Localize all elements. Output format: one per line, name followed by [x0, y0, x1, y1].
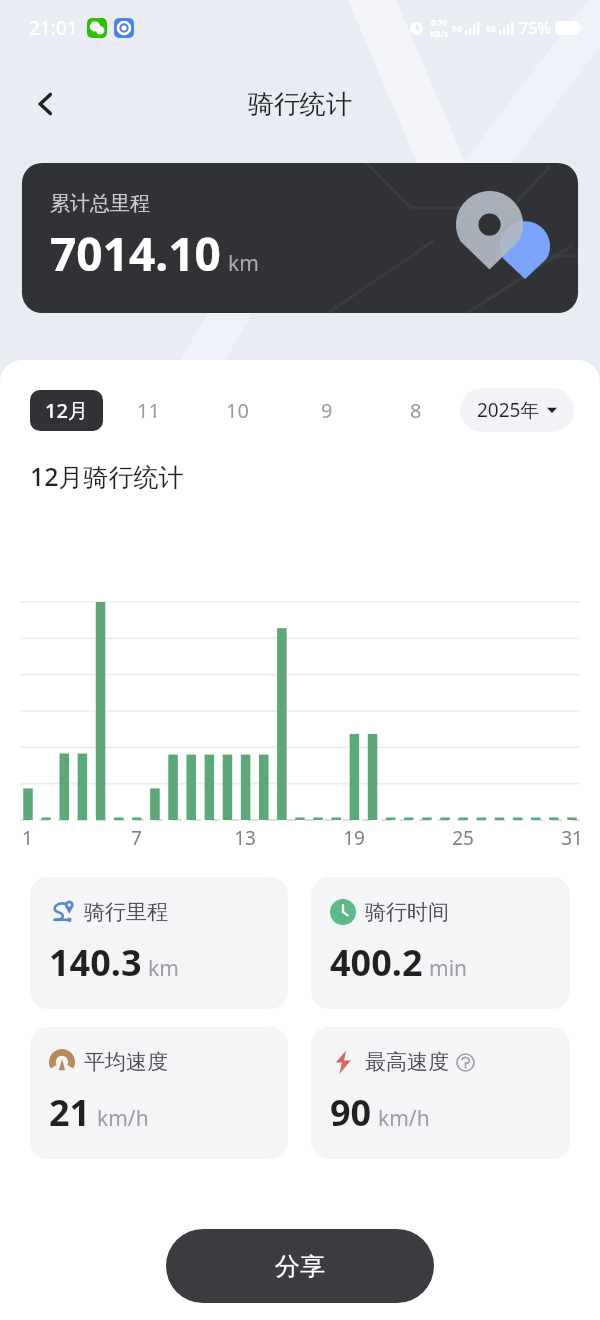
staticText: 8 [410, 397, 422, 424]
staticText: 2025年 [477, 397, 540, 423]
staticText: 1 [22, 825, 33, 861]
button[interactable]: 2025年 [460, 388, 574, 432]
button[interactable]: 骑行时间 [311, 877, 570, 1009]
staticText: 平均速度 [84, 1049, 168, 1075]
staticText: 25 [452, 825, 474, 861]
staticText: 10 [226, 397, 249, 424]
button[interactable]: 平均速度 [30, 1027, 288, 1159]
staticText: min [429, 954, 468, 983]
staticText: 累计总里程 [50, 191, 150, 216]
staticText: 21 [49, 1088, 91, 1137]
staticText: 19 [343, 825, 365, 861]
staticText: 5G [452, 23, 463, 34]
staticText: 21:01 [29, 15, 78, 41]
button[interactable]: 累计总里程 [22, 163, 578, 313]
button[interactable]: 11 [103, 397, 193, 424]
staticText: 最高速度 [365, 1049, 449, 1075]
staticText: 11 [137, 397, 160, 424]
staticText: km [148, 954, 179, 983]
button[interactable]: 9 [282, 397, 371, 424]
staticText: 7014.10 [50, 222, 221, 285]
staticText: 90 [330, 1088, 372, 1137]
button[interactable]: 分享 [166, 1229, 434, 1303]
button[interactable]: 骑行里程 [30, 877, 288, 1009]
staticText: 13 [234, 825, 256, 861]
staticText: 分享 [275, 1251, 325, 1282]
staticText: km/h [97, 1104, 149, 1133]
staticText: 9 [321, 397, 333, 424]
staticText: 31 [561, 825, 583, 861]
button[interactable]: 8 [371, 397, 460, 424]
staticText: 5G [486, 23, 497, 34]
staticText: 0.70 [431, 17, 447, 28]
staticText: 骑行时间 [365, 899, 449, 925]
staticText: km/h [378, 1104, 430, 1133]
staticText: KB/s [430, 28, 448, 39]
button[interactable]: 10 [193, 397, 282, 424]
button[interactable]: 12月 [30, 390, 103, 431]
staticText: km [228, 249, 259, 278]
staticText: 12月骑行统计 [30, 459, 184, 493]
staticText: 400.2 [330, 938, 423, 987]
button[interactable]: 最高速度 [311, 1027, 570, 1159]
staticText: 骑行里程 [84, 899, 168, 925]
staticText: 骑行统计 [248, 88, 352, 121]
staticText: 140.3 [49, 938, 142, 987]
staticText: 12月 [45, 397, 88, 424]
button[interactable]: Back [20, 78, 72, 130]
staticText: 75% [519, 17, 551, 39]
staticText: 7 [131, 825, 142, 861]
